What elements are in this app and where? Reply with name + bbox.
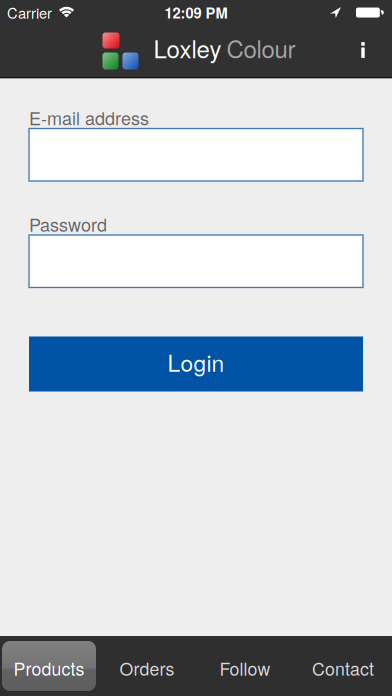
button[interactable]: Follow bbox=[196, 636, 294, 696]
button[interactable]: Login bbox=[29, 336, 363, 391]
staticText: 12:09 PM bbox=[164, 2, 227, 23]
staticText: Products bbox=[13, 655, 84, 681]
button[interactable]: Orders bbox=[98, 636, 196, 696]
staticText: Login bbox=[167, 346, 224, 378]
button[interactable]: Password bbox=[29, 235, 363, 287]
staticText: Carrier bbox=[7, 2, 52, 23]
staticText: Contact bbox=[312, 655, 374, 681]
button[interactable]: Info bbox=[341, 25, 385, 77]
staticText: E-mail address bbox=[29, 105, 149, 130]
staticText: Orders bbox=[119, 655, 174, 681]
button[interactable]: Contact bbox=[294, 636, 392, 696]
staticText: Password bbox=[29, 211, 107, 237]
button[interactable]: E-mail address bbox=[29, 128, 363, 181]
staticText: Follow bbox=[219, 655, 270, 681]
button[interactable]: Products bbox=[0, 636, 98, 696]
staticText: Colour bbox=[226, 31, 295, 65]
staticText: Loxley bbox=[153, 31, 221, 65]
